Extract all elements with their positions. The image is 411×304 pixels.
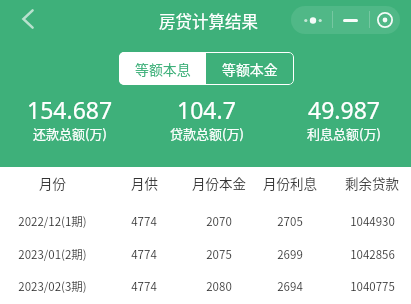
staticText: 2070 [206,213,232,230]
button[interactable]: 最小化 [334,6,367,34]
button[interactable]: 等额本息 [119,52,206,85]
staticText: 月供 [131,173,158,193]
staticText: 2022/12(1期) [18,213,87,230]
staticText: 月份利息 [263,173,317,193]
staticText: 1040775 [350,278,395,295]
staticText: 2080 [206,278,232,295]
staticText: 还款总额(万) [33,124,107,143]
staticText: 2699 [277,246,303,263]
button[interactable]: 等额本金 [206,52,294,85]
staticText: 利息总额(万) [307,124,381,143]
staticText: 等额本金 [222,59,278,79]
staticText: 房贷计算结果 [159,9,258,33]
staticText: 月份本金 [192,173,246,193]
staticText: 2023/02(3期) [18,278,87,295]
staticText: 2023/01(2期) [18,246,87,263]
button[interactable]: 更多 [296,6,330,34]
staticText: 4774 [131,278,157,295]
staticText: 4774 [131,213,157,230]
staticText: 2075 [206,246,232,263]
staticText: 月份 [39,173,66,193]
staticText: 等额本息 [135,59,191,79]
staticText: 2705 [277,213,303,230]
button[interactable]: 返回 [12,3,43,34]
staticText: 贷款总额(万) [170,124,244,143]
staticText: 剩余贷款 [345,173,399,193]
staticText: 2694 [277,278,303,295]
staticText: 104.7 [177,94,236,120]
staticText: 1044930 [350,213,395,230]
button[interactable]: 关闭 [371,6,399,34]
staticText: 154.687 [27,94,113,120]
staticText: 1042856 [350,246,395,263]
staticText: 4774 [131,246,157,263]
staticText: 49.987 [308,94,380,120]
